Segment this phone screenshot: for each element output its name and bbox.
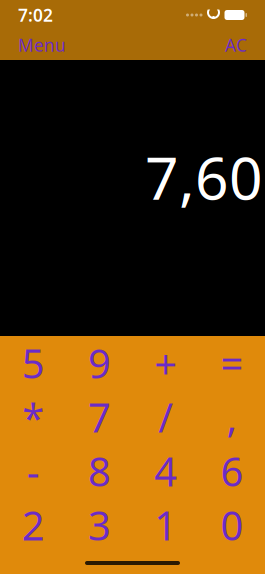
button[interactable]: 7	[66, 390, 132, 444]
button[interactable]: 2	[0, 498, 66, 552]
staticText: 7,60	[145, 138, 263, 216]
button[interactable]: /	[132, 390, 199, 444]
button[interactable]: 5	[0, 336, 66, 390]
staticText: 6	[220, 444, 243, 497]
staticText: 1	[154, 498, 177, 551]
staticText: /	[158, 390, 173, 443]
button[interactable]: =	[199, 336, 265, 390]
staticText: 2	[22, 498, 45, 551]
staticText: 8	[88, 444, 111, 497]
button[interactable]: ,	[199, 390, 265, 444]
staticText: +	[154, 336, 177, 389]
button[interactable]: +	[132, 336, 199, 390]
button[interactable]: 8	[66, 444, 132, 498]
staticText: ,	[226, 390, 237, 443]
staticText: Menu	[18, 33, 66, 56]
button[interactable]: 0	[199, 498, 265, 552]
button[interactable]: *	[0, 390, 66, 444]
staticText: =	[220, 336, 243, 389]
staticText: 3	[88, 498, 111, 551]
staticText: AC	[225, 33, 247, 56]
button[interactable]: AC	[221, 28, 251, 61]
staticText: 4	[154, 444, 177, 497]
staticText: 9	[88, 336, 111, 389]
button[interactable]: 4	[132, 444, 199, 498]
staticText: 5	[22, 336, 45, 389]
staticText: 0	[220, 498, 243, 551]
staticText: 7	[88, 390, 111, 443]
staticText: -	[27, 444, 40, 497]
button[interactable]: 6	[199, 444, 265, 498]
button[interactable]: 3	[66, 498, 132, 552]
button[interactable]: Menu	[14, 28, 70, 61]
button[interactable]: 1	[132, 498, 199, 552]
button[interactable]: -	[0, 444, 66, 498]
button[interactable]: 9	[66, 336, 132, 390]
staticText: *	[22, 390, 44, 443]
staticText: 7:02	[18, 3, 53, 26]
